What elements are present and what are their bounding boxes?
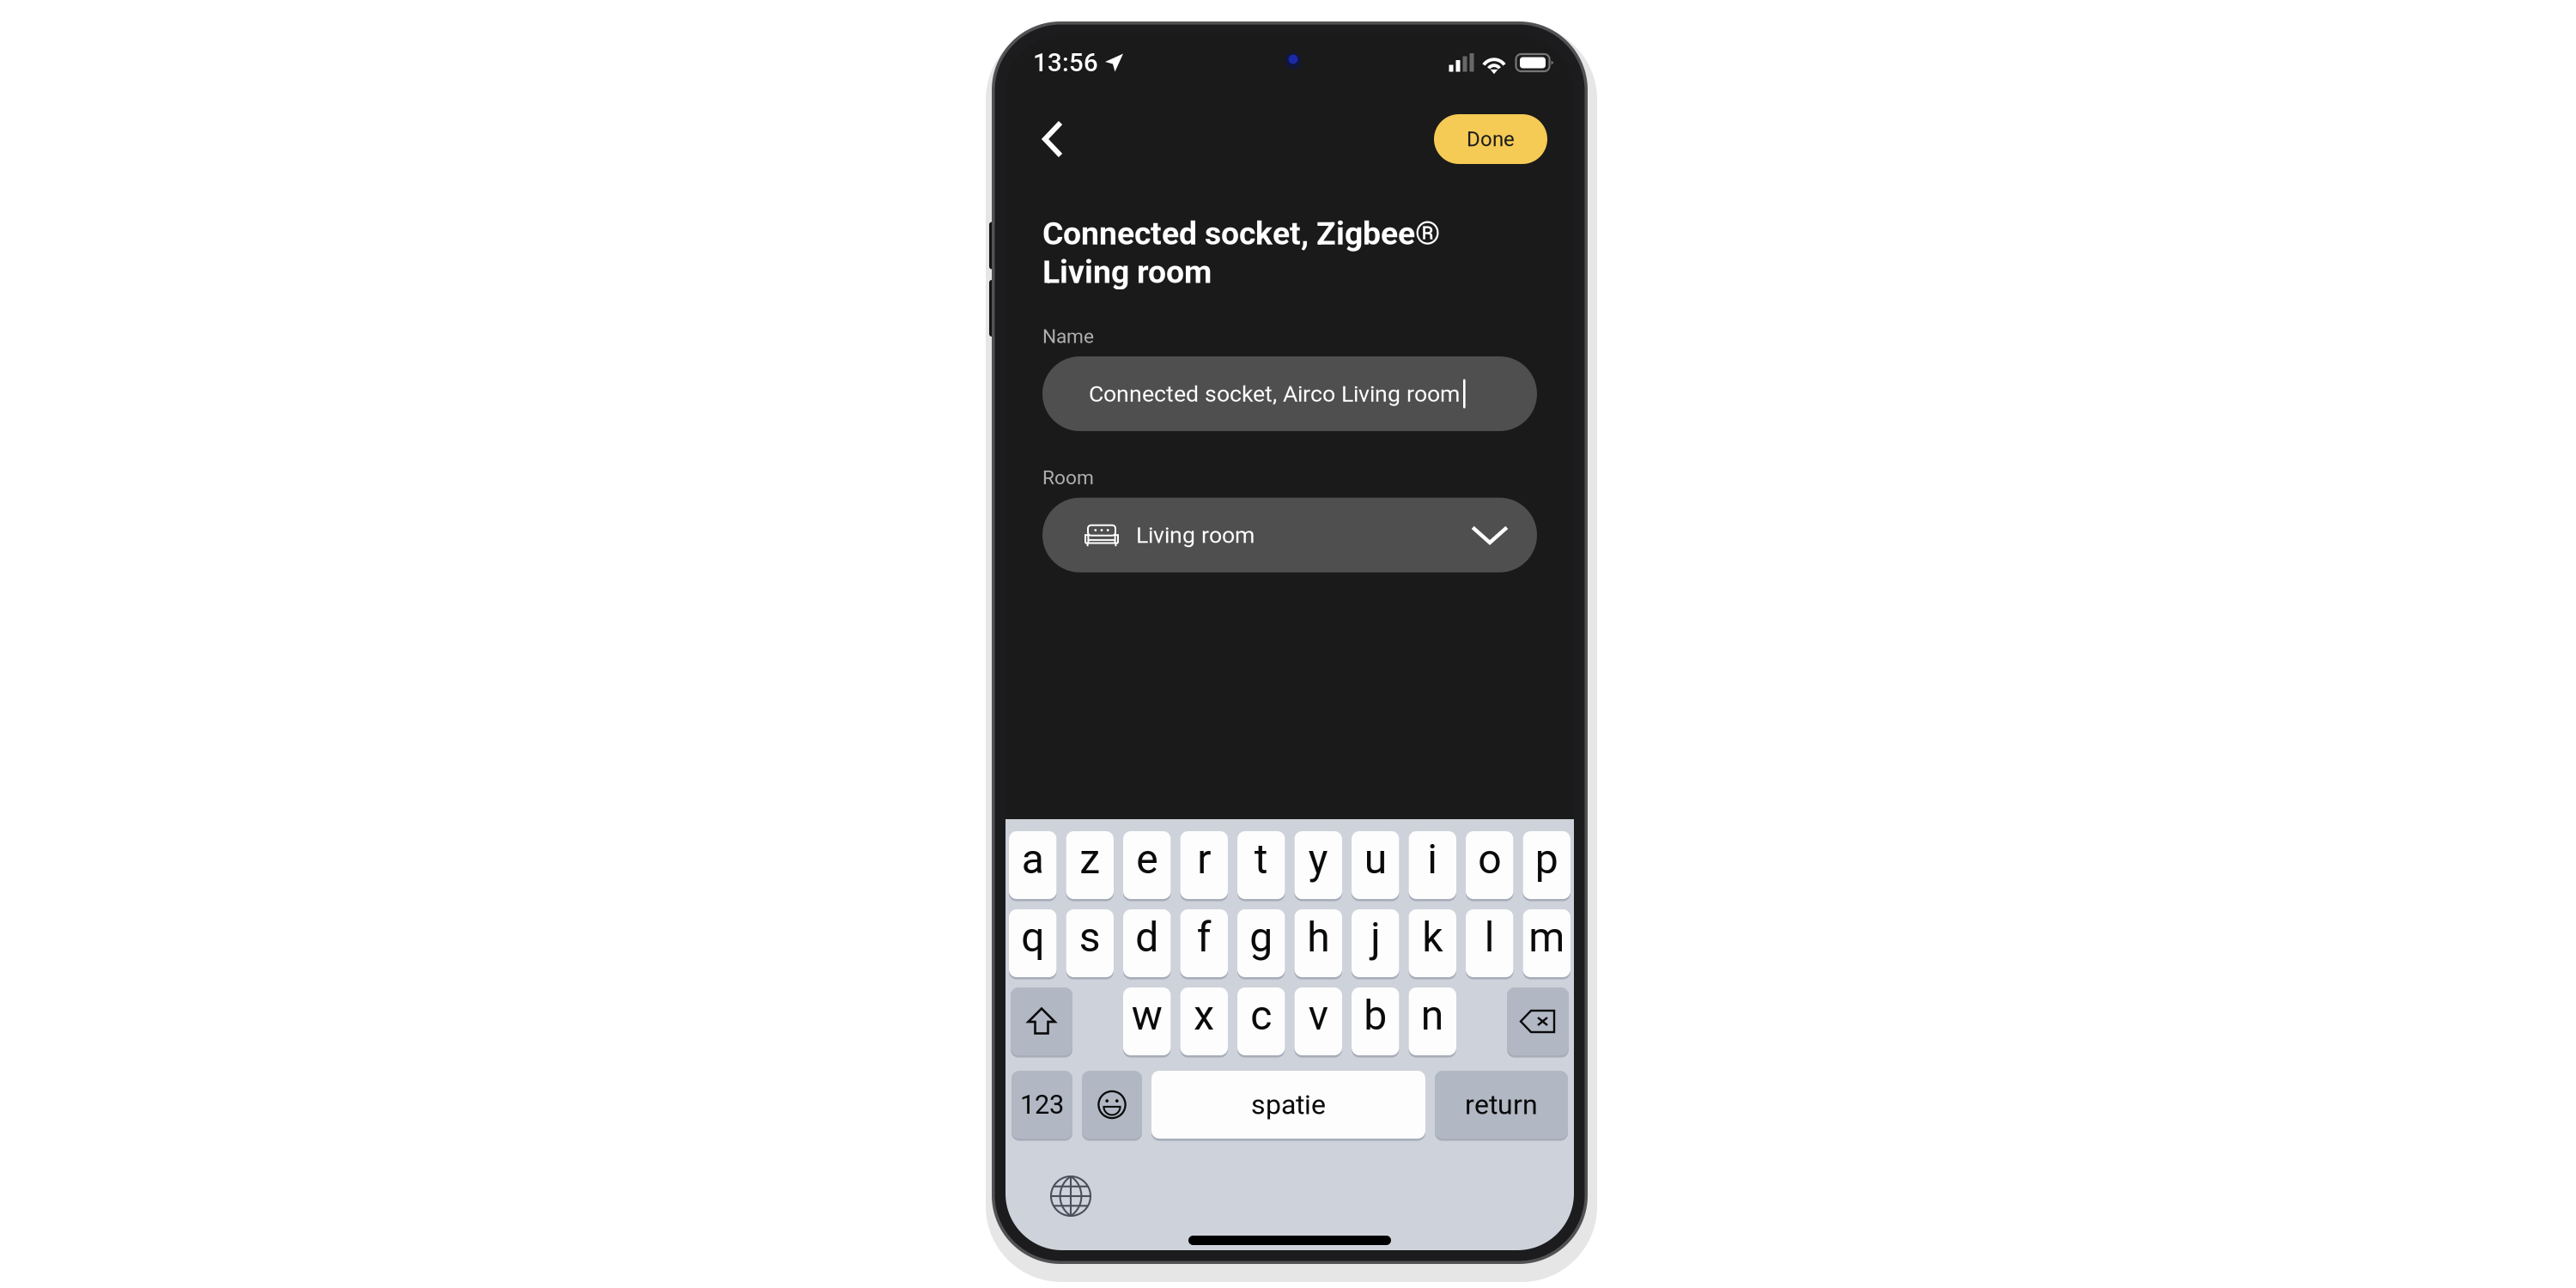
button[interactable]: t xyxy=(1237,831,1285,899)
staticText: d xyxy=(1135,913,1159,961)
staticText: Room xyxy=(1042,466,1094,489)
staticText: v xyxy=(1308,991,1328,1040)
button[interactable]: Shift xyxy=(1011,987,1072,1055)
button[interactable]: d xyxy=(1123,909,1171,977)
staticText: h xyxy=(1307,913,1329,961)
staticText: spatie xyxy=(1251,1089,1326,1121)
button[interactable]: v xyxy=(1294,987,1342,1055)
staticText: c xyxy=(1250,991,1272,1040)
staticText: Living room xyxy=(1136,522,1255,549)
staticText: w xyxy=(1132,991,1162,1040)
button[interactable]: Back xyxy=(1026,110,1079,168)
button[interactable]: b xyxy=(1352,987,1399,1055)
staticText: j xyxy=(1371,913,1380,961)
staticText: e xyxy=(1136,835,1158,883)
staticText: b xyxy=(1364,991,1387,1040)
button[interactable]: l xyxy=(1466,909,1513,977)
button[interactable]: q xyxy=(1009,909,1057,977)
staticText: Connected socket, Zigbee® xyxy=(1042,215,1440,252)
button[interactable]: y xyxy=(1294,831,1342,899)
button[interactable]: x xyxy=(1180,987,1228,1055)
button[interactable]: Delete xyxy=(1507,987,1569,1055)
button[interactable]: Done xyxy=(1434,114,1547,164)
button[interactable]: a xyxy=(1009,831,1057,899)
staticText: 13:56 xyxy=(1033,48,1098,77)
button[interactable]: w xyxy=(1123,987,1171,1055)
staticText: f xyxy=(1197,913,1211,961)
staticText: u xyxy=(1364,835,1387,883)
button[interactable]: f xyxy=(1180,909,1228,977)
button[interactable]: n xyxy=(1409,987,1456,1055)
button[interactable]: s xyxy=(1066,909,1114,977)
button[interactable]: g xyxy=(1237,909,1285,977)
button[interactable]: u xyxy=(1352,831,1399,899)
staticText: 123 xyxy=(1020,1089,1064,1120)
button[interactable]: z xyxy=(1066,831,1114,899)
staticText: k xyxy=(1422,913,1443,961)
button[interactable]: h xyxy=(1294,909,1342,977)
staticText: s xyxy=(1079,913,1101,961)
button[interactable]: Emoji xyxy=(1082,1071,1142,1139)
staticText: r xyxy=(1197,835,1211,883)
staticText: q xyxy=(1021,913,1044,961)
staticText: Name xyxy=(1042,325,1094,348)
staticText: y xyxy=(1308,835,1328,883)
button[interactable]: c xyxy=(1237,987,1285,1055)
staticText: Connected socket, Airco Living room xyxy=(1089,380,1460,407)
button[interactable]: Living room xyxy=(1042,498,1537,572)
staticText: Living room xyxy=(1042,253,1212,291)
button[interactable]: k xyxy=(1409,909,1456,977)
staticText: Done xyxy=(1467,127,1515,151)
staticText: a xyxy=(1022,835,1044,883)
button[interactable]: r xyxy=(1180,831,1228,899)
staticText: x xyxy=(1194,991,1214,1040)
button[interactable]: return xyxy=(1435,1071,1568,1139)
button[interactable]: e xyxy=(1123,831,1171,899)
staticText: n xyxy=(1421,991,1444,1040)
button[interactable]: p xyxy=(1523,831,1571,899)
staticText: p xyxy=(1535,835,1558,883)
staticText: return xyxy=(1465,1089,1538,1121)
staticText: o xyxy=(1478,835,1501,883)
staticText: l xyxy=(1484,913,1495,961)
button[interactable]: i xyxy=(1409,831,1456,899)
button[interactable]: j xyxy=(1352,909,1399,977)
staticText: i xyxy=(1427,835,1438,883)
staticText: t xyxy=(1254,835,1268,883)
staticText: m xyxy=(1529,913,1565,961)
button[interactable]: m xyxy=(1523,909,1571,977)
staticText: z xyxy=(1080,835,1100,883)
button[interactable]: o xyxy=(1466,831,1513,899)
staticText: g xyxy=(1250,913,1273,961)
button[interactable]: Next keyboard xyxy=(1045,1170,1097,1222)
button[interactable]: spatie xyxy=(1151,1071,1425,1139)
button[interactable]: 123 xyxy=(1012,1071,1072,1139)
